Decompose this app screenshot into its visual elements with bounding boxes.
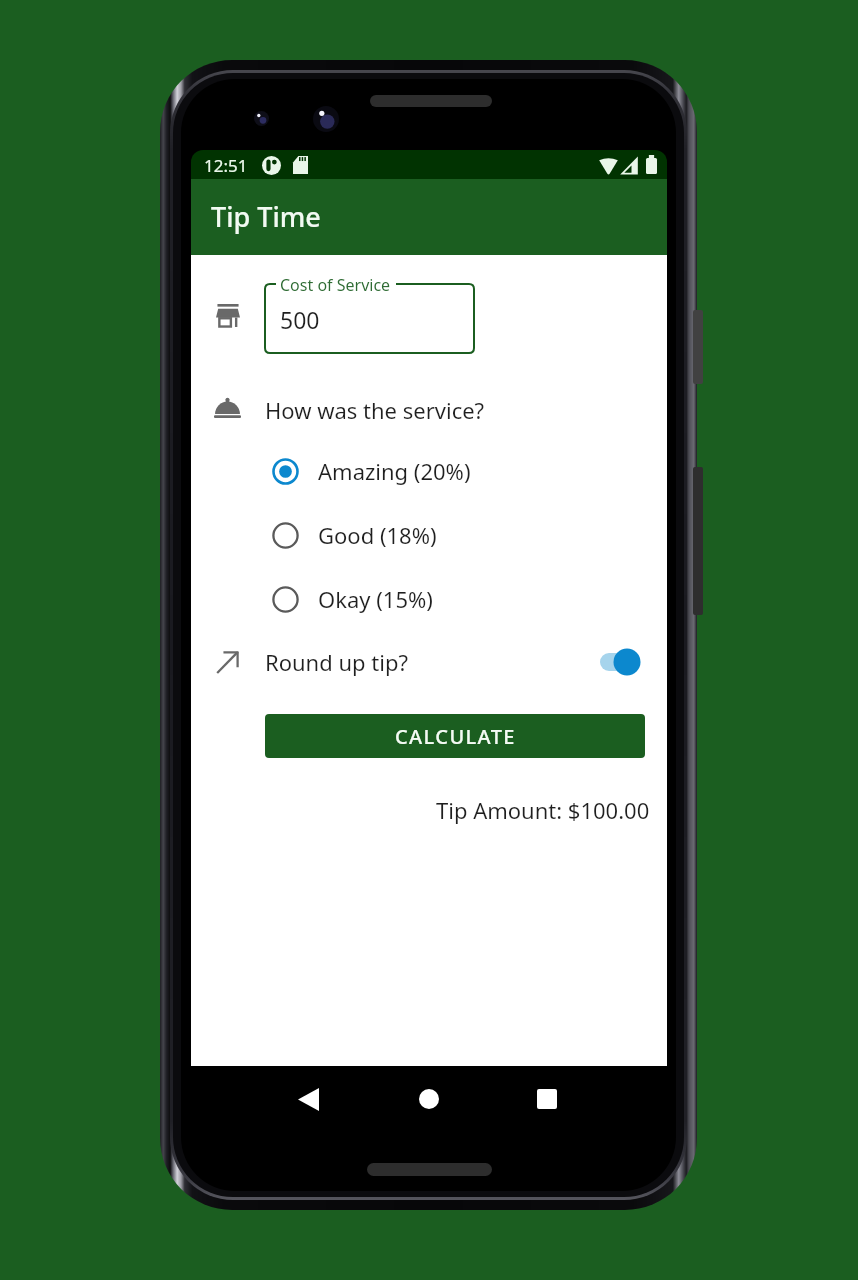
button[interactable]: Back [282, 1073, 334, 1125]
staticText: Round up tip? [265, 647, 408, 677]
staticText: Amazing (20%) [318, 456, 471, 486]
staticText: CALCULATE [395, 723, 516, 750]
button[interactable]: CALCULATE [265, 714, 645, 758]
staticText: 500 [280, 304, 320, 335]
staticText: Tip Time [211, 198, 321, 235]
staticText: Tip Amount: $100.00 [436, 795, 650, 825]
button[interactable]: Round up tip? [191, 640, 667, 684]
button[interactable] [600, 646, 644, 678]
button[interactable]: Okay (15%) [191, 577, 667, 621]
button[interactable]: Good (18%) [191, 513, 667, 557]
staticText: Good (18%) [318, 520, 437, 550]
button[interactable]: Home [403, 1073, 455, 1125]
button[interactable]: Cost of Service [265, 277, 475, 354]
button[interactable]: Recent apps [521, 1073, 573, 1125]
button[interactable]: Amazing (20%) [191, 449, 667, 493]
staticText: 12:51 [204, 154, 248, 177]
staticText: Okay (15%) [318, 584, 433, 614]
staticText: Cost of Service [280, 274, 391, 296]
staticText: How was the service? [265, 395, 485, 425]
